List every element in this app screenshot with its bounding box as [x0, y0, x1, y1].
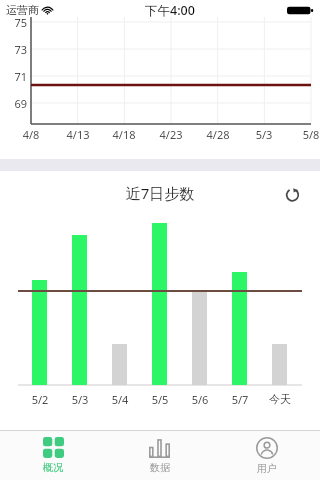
staticText: 73 — [4, 42, 27, 57]
button[interactable]: 概况 — [0, 431, 106, 480]
staticText: 5/3 — [244, 127, 284, 142]
staticText: 4/23 — [151, 127, 191, 142]
staticText: 5/7 — [220, 392, 260, 407]
button[interactable]: 数据 — [106, 431, 213, 480]
staticText: 今天 — [260, 392, 300, 406]
staticText: 4/8 — [11, 127, 51, 142]
staticText: 4/13 — [58, 127, 98, 142]
button[interactable]: 刷新 — [278, 180, 306, 208]
staticText: 4/18 — [104, 127, 144, 142]
staticText: 5/5 — [140, 392, 180, 407]
button[interactable]: 用户 — [213, 431, 320, 480]
staticText: 5/4 — [100, 392, 140, 407]
staticText: 下午4:00 — [145, 2, 195, 19]
staticText: 用户 — [257, 462, 277, 475]
staticText: 75 — [4, 15, 27, 30]
staticText: 4/28 — [198, 127, 238, 142]
staticText: 69 — [4, 96, 27, 111]
staticText: 概况 — [43, 461, 63, 474]
staticText: 近7日步数 — [0, 183, 320, 203]
staticText: 5/2 — [20, 392, 60, 407]
staticText: 数据 — [150, 461, 170, 474]
staticText: 5/8 — [291, 127, 320, 142]
staticText: 5/3 — [60, 392, 100, 407]
staticText: 运营商 — [6, 3, 39, 17]
staticText: 5/6 — [180, 392, 220, 407]
staticText: 71 — [4, 69, 27, 84]
